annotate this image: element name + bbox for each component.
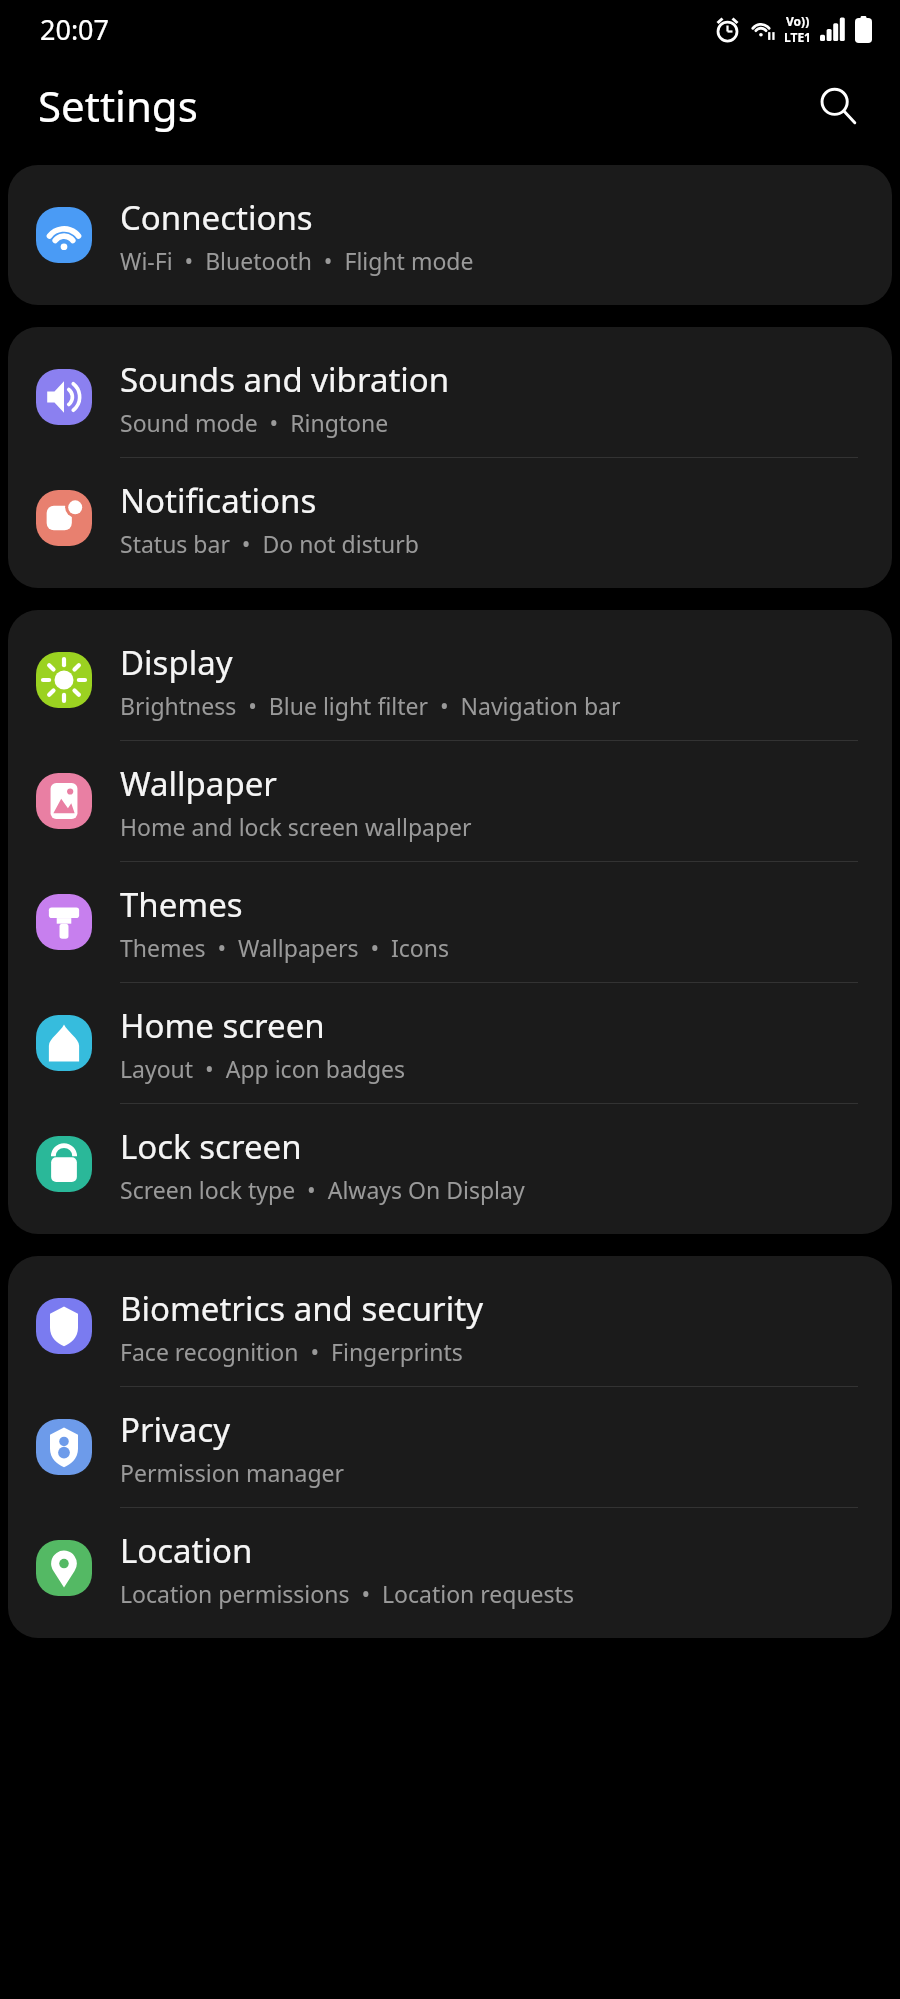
staticText: Display xyxy=(120,640,233,685)
staticText: Wi-Fi • Bluetooth • Flight mode xyxy=(120,245,474,276)
staticText: Location permissions • Location requests xyxy=(120,1578,574,1609)
staticText: Privacy xyxy=(120,1407,231,1452)
button[interactable]: Search xyxy=(806,74,870,138)
staticText: Home screen xyxy=(120,1003,325,1048)
button[interactable]: Wallpaper xyxy=(8,741,892,861)
staticText: Wallpaper xyxy=(120,761,277,806)
staticText: Layout • App icon badges xyxy=(120,1053,406,1084)
button[interactable]: Display xyxy=(8,620,892,740)
staticText: Lock screen xyxy=(120,1124,302,1169)
staticText: Location xyxy=(120,1528,253,1573)
button[interactable]: Location xyxy=(8,1508,892,1628)
button[interactable]: Lock screen xyxy=(8,1104,892,1224)
staticText: Settings xyxy=(38,77,198,134)
staticText: Face recognition • Fingerprints xyxy=(120,1336,463,1367)
staticText: Notifications xyxy=(120,478,317,523)
button[interactable]: Privacy xyxy=(8,1387,892,1507)
staticText: Connections xyxy=(120,195,313,240)
button[interactable]: Connections xyxy=(8,175,892,295)
staticText: Sounds and vibration xyxy=(120,357,450,402)
staticText: Permission manager xyxy=(120,1457,345,1488)
staticText: Themes xyxy=(120,882,243,927)
staticText: Status bar • Do not disturb xyxy=(120,528,419,559)
staticText: Sound mode • Ringtone xyxy=(120,407,389,438)
staticText: Brightness • Blue light filter • Navigat… xyxy=(120,690,621,721)
button[interactable]: Home screen xyxy=(8,983,892,1103)
staticText: Biometrics and security xyxy=(120,1286,483,1331)
staticText: Home and lock screen wallpaper xyxy=(120,811,472,842)
staticText: Screen lock type • Always On Display xyxy=(120,1174,525,1205)
button[interactable]: Notifications xyxy=(8,458,892,578)
button[interactable]: Sounds and vibration xyxy=(8,337,892,457)
staticText: Vo)) xyxy=(786,13,810,29)
button[interactable]: Biometrics and security xyxy=(8,1266,892,1386)
button[interactable]: Themes xyxy=(8,862,892,982)
staticText: LTE1 xyxy=(784,29,811,45)
staticText: Themes • Wallpapers • Icons xyxy=(120,932,449,963)
staticText: 20:07 xyxy=(40,11,110,48)
